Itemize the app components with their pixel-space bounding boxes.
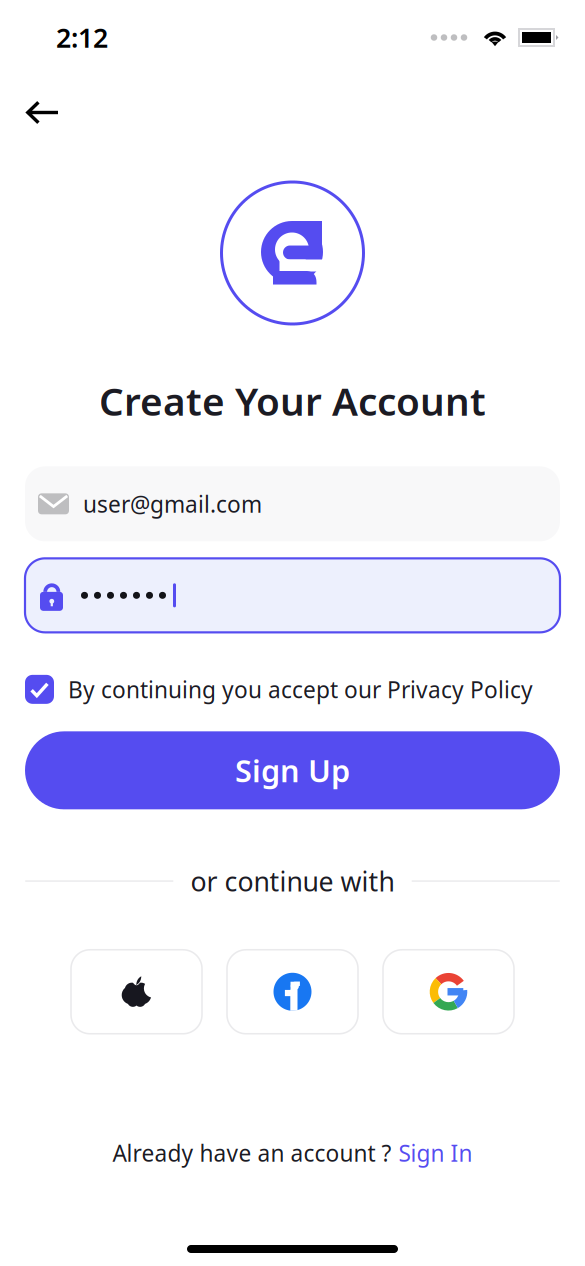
staticText: Create Your Account: [99, 375, 486, 426]
button[interactable]: Already have an account ?: [100, 1130, 484, 1176]
button[interactable]: By continuing you accept our Privacy Pol…: [0, 667, 585, 711]
staticText: Sign Up: [235, 750, 350, 791]
staticText: By continuing you accept our Privacy Pol…: [68, 674, 533, 704]
button[interactable]: Continue with Google: [383, 950, 514, 1034]
staticText: or continue with: [190, 863, 394, 899]
staticText: Already have an account ?: [112, 1138, 391, 1168]
button[interactable]: Back: [14, 88, 71, 136]
staticText: 2:12: [56, 20, 108, 55]
staticText: user@gmail.com: [83, 489, 262, 519]
button[interactable]: Sign Up: [0, 731, 585, 809]
button[interactable]: Continue with Apple: [71, 950, 202, 1034]
staticText: Sign In: [398, 1138, 472, 1168]
button[interactable]: Continue with Facebook: [227, 950, 358, 1034]
